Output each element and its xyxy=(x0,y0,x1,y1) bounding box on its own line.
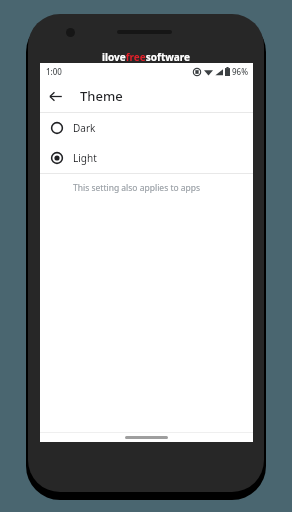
staticText: ilovefreesoftware xyxy=(102,50,191,64)
staticText: Theme xyxy=(80,87,123,105)
staticText: This setting also applies to apps xyxy=(73,182,201,194)
button[interactable]: Dark xyxy=(40,113,253,143)
staticText: Light xyxy=(73,151,97,165)
staticText: 1:00 xyxy=(46,66,62,77)
button[interactable]: Back xyxy=(40,81,70,111)
staticText: 96% xyxy=(232,66,248,77)
staticText: Dark xyxy=(73,121,96,135)
button[interactable]: Light xyxy=(40,143,253,173)
button[interactable]: Home xyxy=(125,436,168,439)
